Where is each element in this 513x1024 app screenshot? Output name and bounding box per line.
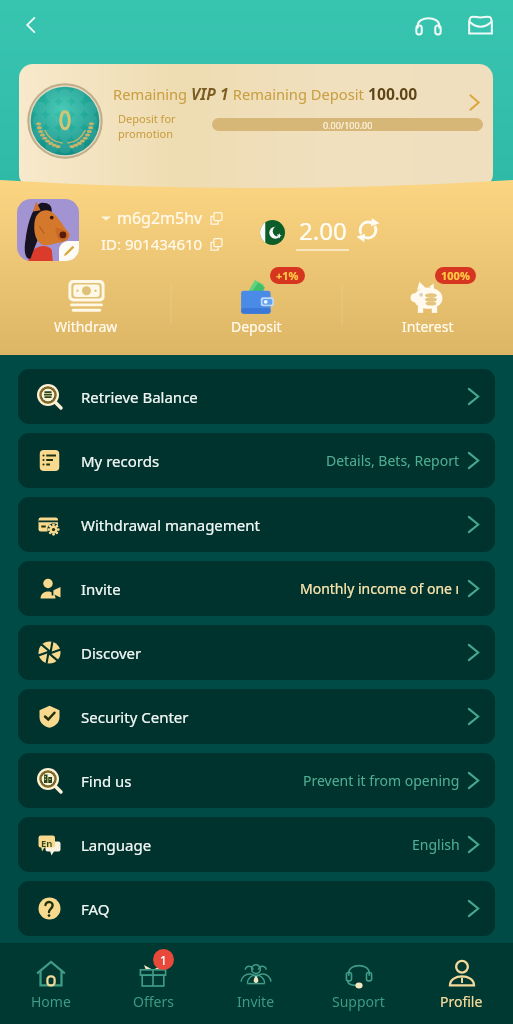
- staticText: Interest: [402, 317, 454, 336]
- button[interactable]: Profile: [410, 943, 513, 1024]
- button[interactable]: Invite: [204, 943, 307, 1024]
- button[interactable]: Retrieve Balance: [18, 369, 495, 424]
- button[interactable]: 100%: [342, 276, 513, 336]
- staticText: Offers: [133, 992, 174, 1011]
- staticText: Language: [81, 835, 152, 855]
- staticText: 2.00: [299, 214, 347, 247]
- staticText: +1%: [276, 268, 299, 283]
- staticText: ID: 901434610: [101, 234, 203, 254]
- staticText: Profile: [440, 992, 483, 1011]
- staticText: m6g2m5hv: [117, 207, 203, 229]
- button[interactable]: Home: [0, 943, 102, 1024]
- button[interactable]: Back: [10, 4, 52, 46]
- staticText: Withdrawal management: [81, 515, 260, 535]
- staticText: Invite: [81, 579, 121, 599]
- button[interactable]: Invite: [18, 561, 495, 616]
- button[interactable]: Support: [307, 943, 410, 1024]
- button[interactable]: Discover: [18, 625, 495, 680]
- staticText: Invite: [237, 992, 275, 1011]
- staticText: Monthly income of one ı: [300, 579, 460, 598]
- staticText: Support: [332, 992, 385, 1011]
- staticText: Retrieve Balance: [81, 387, 198, 407]
- button[interactable]: Withdraw: [0, 276, 171, 336]
- button[interactable]: Avatar: [17, 199, 79, 261]
- staticText: 100%: [441, 268, 470, 283]
- staticText: Security Center: [81, 707, 189, 727]
- button[interactable]: My records: [18, 433, 495, 488]
- staticText: 100.00: [368, 83, 418, 104]
- staticText: Prevent it from opening: [303, 771, 460, 790]
- button[interactable]: Messages: [457, 2, 503, 48]
- staticText: 0.00/100.00: [323, 119, 373, 131]
- button[interactable]: En: [18, 817, 495, 872]
- staticText: Withdraw: [54, 317, 118, 336]
- staticText: Discover: [81, 643, 142, 663]
- staticText: Deposit: [231, 317, 282, 336]
- button[interactable]: +1%: [171, 276, 342, 336]
- staticText: Remaining Deposit: [229, 84, 368, 104]
- button[interactable]: Remaining: [19, 64, 493, 188]
- staticText: English: [412, 835, 460, 854]
- button[interactable]: Find us: [18, 753, 495, 808]
- staticText: My records: [81, 451, 160, 471]
- button[interactable]: Customer support: [405, 2, 451, 48]
- staticText: Deposit for promotion: [118, 111, 176, 141]
- staticText: Find us: [81, 771, 132, 791]
- staticText: VIP 1: [191, 83, 229, 104]
- button[interactable]: Security Center: [18, 689, 495, 744]
- staticText: Home: [31, 992, 71, 1011]
- staticText: En: [41, 837, 53, 850]
- button[interactable]: Refresh balance: [356, 218, 380, 242]
- button[interactable]: FAQ: [18, 881, 495, 936]
- staticText: Remaining: [113, 84, 191, 104]
- staticText: Details, Bets, Report: [326, 451, 460, 470]
- staticText: FAQ: [81, 899, 110, 919]
- button[interactable]: Copy ID: [210, 238, 223, 251]
- button[interactable]: 1: [102, 943, 204, 1024]
- button[interactable]: Withdrawal management: [18, 497, 495, 552]
- button[interactable]: Copy username: [210, 212, 223, 225]
- staticText: 1: [160, 952, 167, 968]
